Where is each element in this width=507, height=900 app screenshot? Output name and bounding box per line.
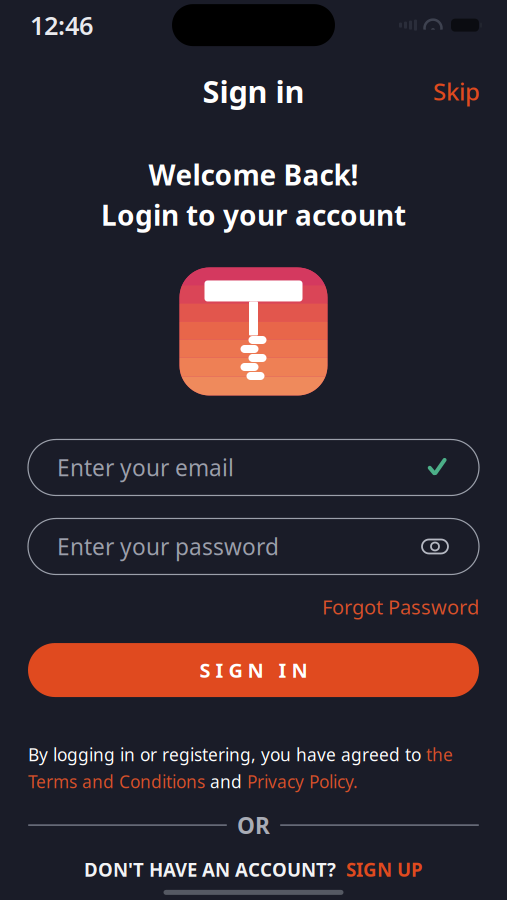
button[interactable]: Forgot Password: [322, 593, 479, 620]
staticText: and: [205, 770, 247, 793]
button[interactable]: Skip: [423, 67, 490, 115]
staticText: Welcome Back!: [148, 156, 358, 193]
staticText: Terms and Conditions: [28, 770, 205, 793]
staticText: Enter your email: [57, 452, 234, 482]
staticText: Skip: [433, 75, 480, 107]
staticText: Enter your password: [57, 531, 279, 561]
staticText: OR: [237, 810, 270, 840]
button[interactable]: Privacy Policy.: [247, 770, 358, 793]
staticText: the: [426, 743, 453, 766]
button[interactable]: Terms and Conditions: [28, 770, 205, 793]
staticText: 12:46: [30, 8, 93, 42]
button[interactable]: Show password: [420, 533, 450, 559]
button[interactable]: S I G N I N: [0, 643, 507, 697]
staticText: Privacy Policy.: [247, 770, 358, 793]
staticText: Login to your account: [101, 196, 406, 233]
button[interactable]: SIGN UP: [346, 857, 423, 882]
staticText: Sign in: [202, 71, 304, 111]
staticText: S I G N I N: [199, 657, 307, 683]
staticText: SIGN UP: [346, 857, 423, 882]
staticText: DON'T HAVE AN ACCOUNT?: [84, 857, 336, 882]
button[interactable]: the: [426, 743, 453, 766]
staticText: Forgot Password: [322, 593, 479, 620]
staticText: By logging in or registering, you have a…: [28, 743, 426, 766]
